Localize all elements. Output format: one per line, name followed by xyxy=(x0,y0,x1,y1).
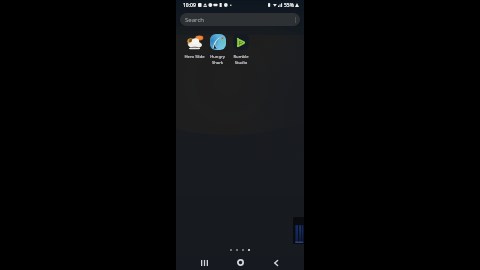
button[interactable]: More options xyxy=(291,16,299,24)
button[interactable]: Recents xyxy=(189,255,219,270)
button[interactable]: Rumble Studio xyxy=(229,34,252,65)
staticText: 10:09 xyxy=(183,2,196,9)
button[interactable]: Widget xyxy=(293,217,304,244)
staticText: Hero Slide xyxy=(184,54,205,60)
staticText: Hungry Shark xyxy=(210,54,225,65)
button[interactable]: Hungry Shark xyxy=(206,34,229,65)
staticText: Rumble Studio xyxy=(233,54,249,65)
button[interactable]: Hero Slide xyxy=(183,34,206,60)
button[interactable]: Back xyxy=(261,255,291,270)
staticText: Search xyxy=(185,16,204,24)
button[interactable]: Home xyxy=(225,255,255,270)
button[interactable]: Search xyxy=(180,13,300,26)
staticText: 55% xyxy=(284,2,294,9)
